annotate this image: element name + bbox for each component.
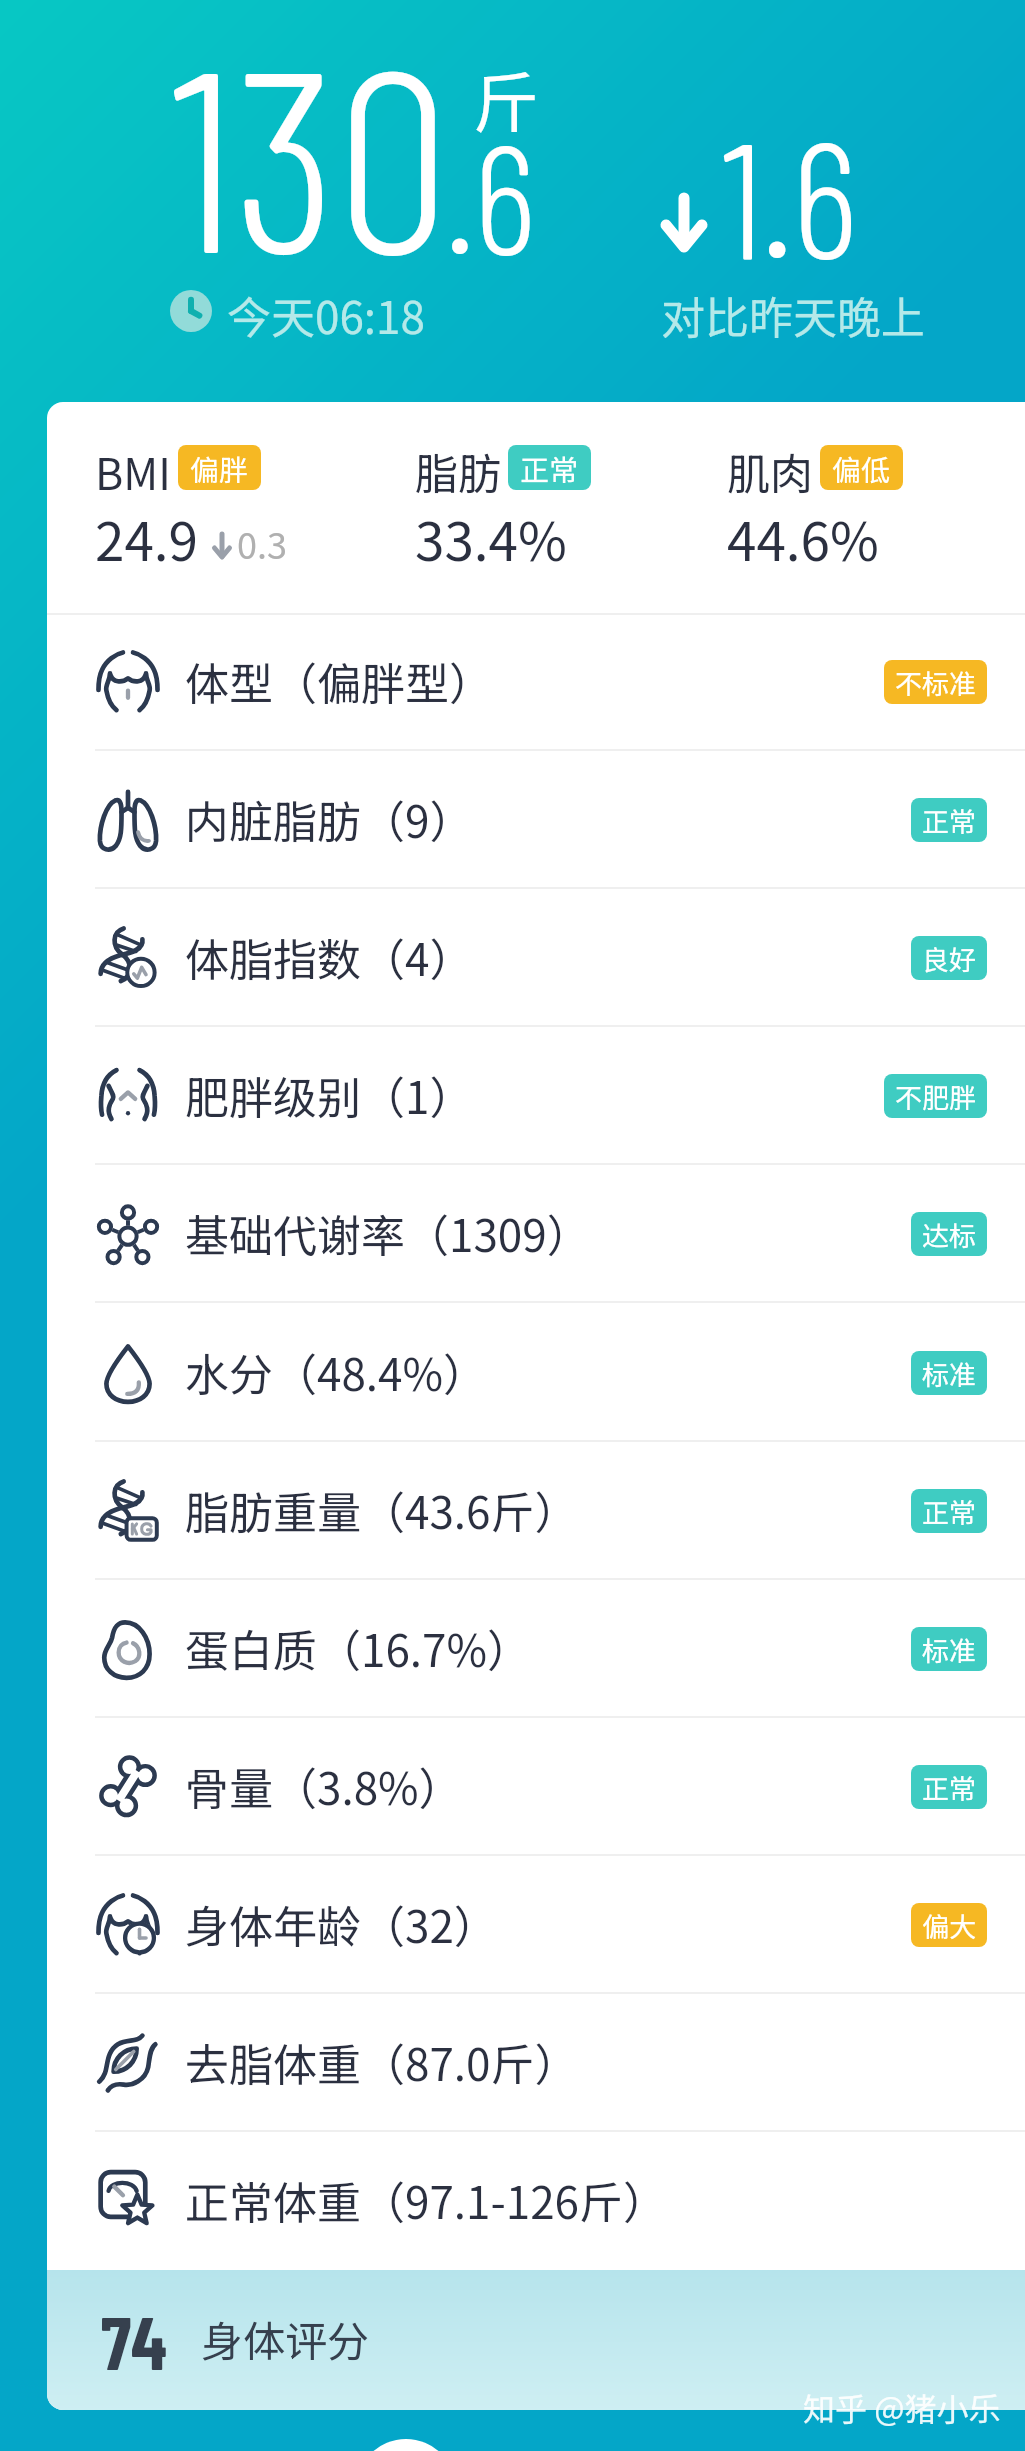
- button[interactable]: 蛋白质（16.7%）: [47, 1580, 1025, 1718]
- staticText: 正常: [922, 1768, 976, 1807]
- staticText: 达标: [922, 1215, 976, 1254]
- staticText: 正常: [922, 1492, 976, 1531]
- staticText: 正常体重（97.1-126斤）: [185, 2168, 668, 2232]
- staticText: 今天06:18: [227, 283, 425, 347]
- button[interactable]: 正常体重（97.1-126斤）: [47, 2132, 1025, 2270]
- staticText: 斤: [473, 50, 539, 146]
- staticText: 24.9: [95, 500, 198, 577]
- staticText: 不肥胖: [895, 1077, 976, 1116]
- staticText: 蛋白质（16.7%）: [185, 1616, 532, 1680]
- staticText: 偏低: [832, 447, 891, 489]
- staticText: 身体年龄（32）: [185, 1892, 498, 1956]
- staticText: 标准: [922, 1354, 976, 1393]
- button[interactable]: 身体年龄（32）: [47, 1856, 1025, 1994]
- staticText: 肌肉: [727, 440, 813, 502]
- button[interactable]: 去脂体重（87.0斤）: [47, 1994, 1025, 2132]
- staticText: 对比昨天晚上: [661, 283, 925, 347]
- button[interactable]: 基础代谢率（1309）: [47, 1165, 1025, 1303]
- staticText: 基础代谢率（1309）: [185, 1201, 591, 1265]
- staticText: 不标准: [895, 663, 976, 702]
- staticText: 内脏脂肪（9）: [185, 787, 474, 851]
- staticText: 体型（偏胖型）: [185, 649, 493, 713]
- staticText: 1.6: [722, 96, 858, 292]
- button[interactable]: 74: [47, 2270, 1025, 2410]
- staticText: 脂肪重量（43.6斤）: [185, 1478, 579, 1542]
- staticText: 水分（48.4%）: [185, 1340, 488, 1404]
- staticText: 44.6%: [727, 500, 879, 577]
- staticText: 脂肪: [415, 440, 501, 502]
- staticText: 33.4%: [415, 500, 567, 577]
- button[interactable]: 脂肪重量（43.6斤）: [47, 1442, 1025, 1580]
- staticText: .6: [446, 101, 536, 286]
- button[interactable]: 肥胖级别（1）: [47, 1027, 1025, 1165]
- button[interactable]: 内脏脂肪（9）: [47, 751, 1025, 889]
- staticText: 偏胖: [190, 447, 249, 489]
- staticText: 良好: [922, 939, 976, 978]
- staticText: 正常: [520, 447, 579, 489]
- staticText: 知乎 @猪小乐: [803, 2384, 1001, 2430]
- button[interactable]: Measure: [356, 2439, 456, 2451]
- button[interactable]: 水分（48.4%）: [47, 1304, 1025, 1442]
- staticText: 偏大: [922, 1906, 976, 1945]
- staticText: 标准: [922, 1630, 976, 1669]
- staticText: 74: [101, 2296, 167, 2385]
- staticText: 肥胖级别（1）: [185, 1063, 474, 1127]
- staticText: 骨量（3.8%）: [185, 1754, 463, 1818]
- staticText: 身体评分: [201, 2308, 370, 2369]
- staticText: 130: [171, 0, 450, 304]
- staticText: BMI: [95, 440, 171, 502]
- button[interactable]: 骨量（3.8%）: [47, 1718, 1025, 1856]
- staticText: 去脂体重（87.0斤）: [185, 2030, 579, 2094]
- staticText: 体脂指数（4）: [185, 925, 474, 989]
- button[interactable]: 体型（偏胖型）: [47, 613, 1025, 751]
- staticText: 0.3: [237, 517, 287, 569]
- button[interactable]: 体脂指数（4）: [47, 889, 1025, 1027]
- staticText: 正常: [922, 801, 976, 840]
